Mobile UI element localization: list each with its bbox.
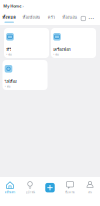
button[interactable]: ครัว (47, 14, 56, 23)
staticText: My Home (3, 3, 21, 9)
staticText: • ปิด (6, 53, 12, 57)
staticText: ทีวี (6, 46, 11, 53)
button[interactable]: ห้องนั่งเล่น (22, 14, 40, 23)
staticText: ห้องนั่งเล่น (22, 14, 40, 20)
staticText: เครื่องฟอก (53, 46, 70, 53)
button[interactable]: ข้อความ (60, 181, 80, 194)
button[interactable]: อุปกรณ์ (20, 181, 40, 194)
button[interactable]: ทั้งหมด (2, 14, 16, 23)
staticText: หน้าหลัก (4, 190, 15, 194)
staticText: › (23, 3, 24, 9)
staticText: ไฟห้อง (5, 78, 17, 85)
staticText: ฉัน (88, 190, 92, 194)
staticText: • ปิด (53, 53, 59, 57)
staticText: ครัว (48, 14, 55, 20)
button[interactable]: My Home (3, 3, 24, 9)
staticText: • ปิด (5, 85, 11, 89)
button[interactable]: ฉัน (80, 181, 100, 194)
button[interactable]: ทีวี (4, 28, 49, 58)
button[interactable]: เครื่องฟอก (51, 28, 96, 58)
button[interactable]: Grid view (81, 16, 85, 21)
button[interactable]: ไฟห้อง (2, 60, 47, 90)
staticText: ทั้งหมด (2, 14, 16, 20)
button[interactable]: หน้าหลัก (0, 181, 20, 194)
button[interactable]: ห้องนอน (62, 14, 77, 23)
staticText: ห้องนอน (62, 14, 77, 20)
button[interactable]: More (88, 16, 94, 21)
staticText: อุปกรณ์ (25, 190, 34, 194)
button[interactable]: Add device (45, 183, 55, 192)
staticText: ••• (88, 16, 94, 21)
staticText: ข้อความ (65, 190, 75, 194)
